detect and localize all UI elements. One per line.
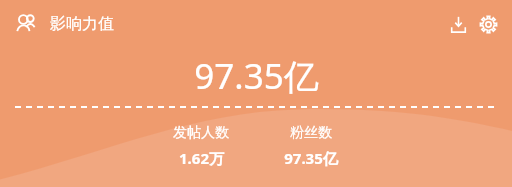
button[interactable]: Download: [444, 10, 472, 38]
staticText: 影响力值: [50, 14, 114, 34]
button[interactable]: 发帖人数: [155, 124, 247, 168]
button[interactable]: Group: [12, 10, 40, 38]
staticText: 粉丝数: [290, 124, 332, 142]
button[interactable]: 粉丝数: [265, 124, 357, 168]
staticText: 1.62万: [179, 148, 224, 168]
button[interactable]: Settings: [474, 10, 502, 38]
staticText: 发帖人数: [173, 124, 229, 142]
staticText: 97.35亿: [284, 148, 338, 168]
staticText: 97.35亿: [194, 52, 319, 100]
